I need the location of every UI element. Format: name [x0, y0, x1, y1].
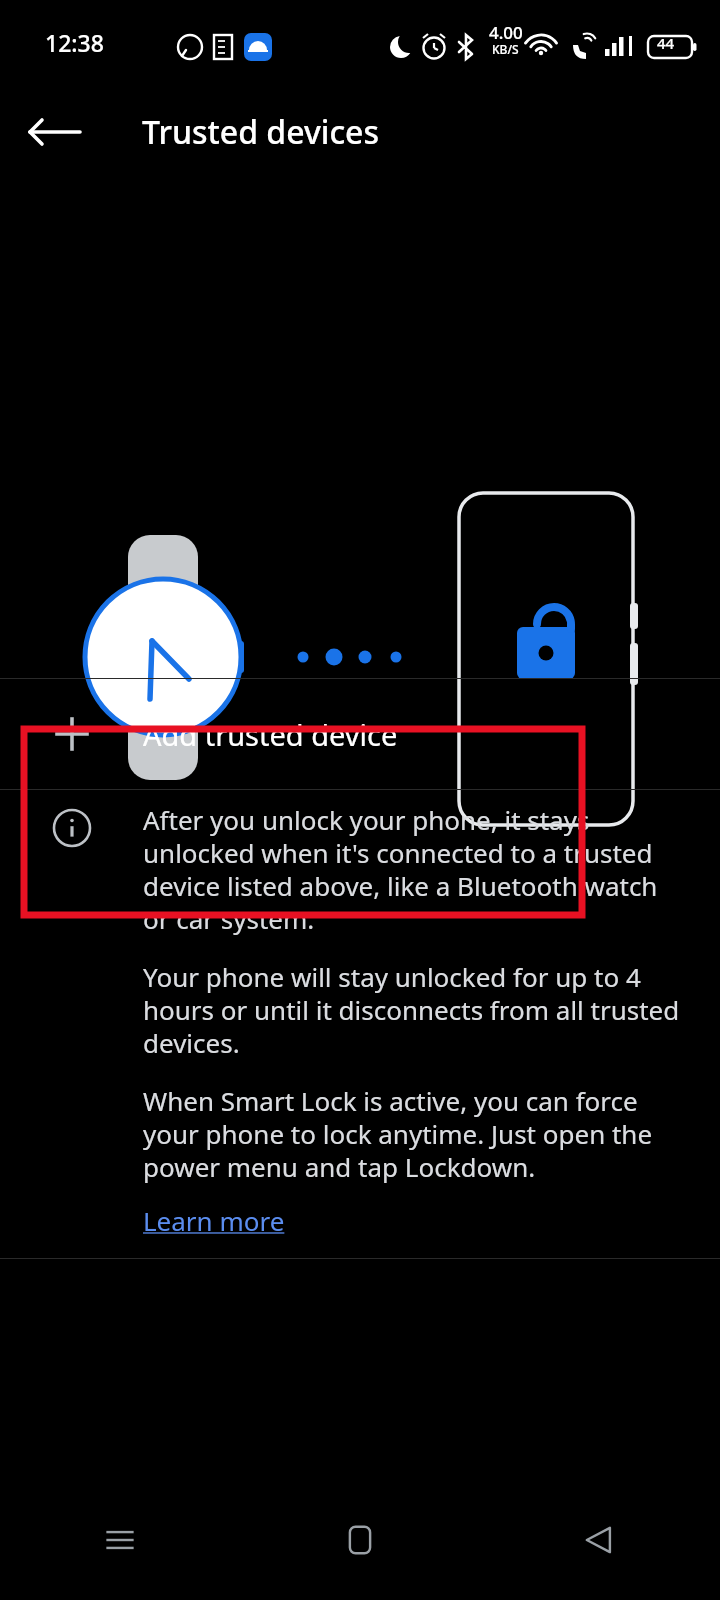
button[interactable]: Recent apps: [0, 1480, 240, 1600]
staticText: Trusted devices: [142, 110, 380, 154]
button[interactable]: Add trusted device: [0, 679, 720, 789]
button[interactable]: Back: [480, 1480, 720, 1600]
staticText: Learn more: [143, 1203, 285, 1238]
staticText: When Smart Lock is active, you can force…: [143, 1083, 690, 1185]
button[interactable]: Learn more: [143, 1203, 285, 1238]
staticText: 12:38: [45, 27, 104, 58]
button[interactable]: Back: [22, 99, 88, 165]
staticText: 44: [657, 33, 675, 53]
staticText: KB/S: [492, 41, 519, 57]
staticText: After you unlock your phone, it stays un…: [143, 802, 690, 937]
staticText: Your phone will stay unlocked for up to …: [143, 959, 690, 1061]
staticText: 4.00: [489, 21, 523, 44]
staticText: Add trusted device: [143, 715, 398, 754]
button[interactable]: Home: [240, 1480, 480, 1600]
